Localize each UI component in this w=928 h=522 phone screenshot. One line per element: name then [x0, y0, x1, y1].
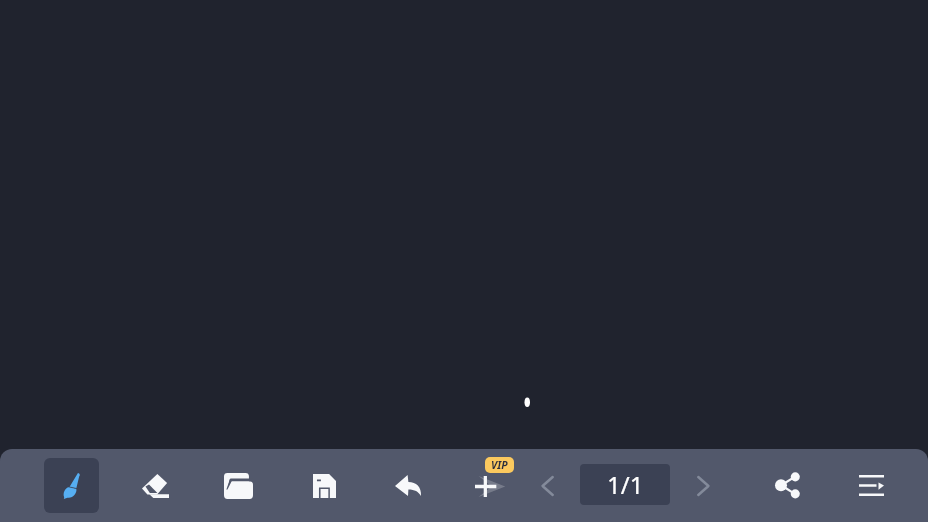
button[interactable]: Brush [44, 458, 99, 513]
button[interactable]: Open [211, 458, 265, 513]
button[interactable]: Save [297, 458, 351, 513]
button[interactable]: Add page [464, 458, 518, 513]
button[interactable]: Previous page [520, 458, 574, 513]
button[interactable]: Menu [844, 458, 898, 513]
button[interactable]: Share [761, 458, 815, 513]
button[interactable]: 1/1 [580, 464, 670, 505]
staticText: VIP [491, 458, 508, 472]
button[interactable]: Undo [381, 458, 435, 513]
button[interactable]: Next page [676, 458, 730, 513]
staticText: 1/1 [607, 468, 644, 501]
button[interactable]: Eraser [128, 458, 182, 513]
